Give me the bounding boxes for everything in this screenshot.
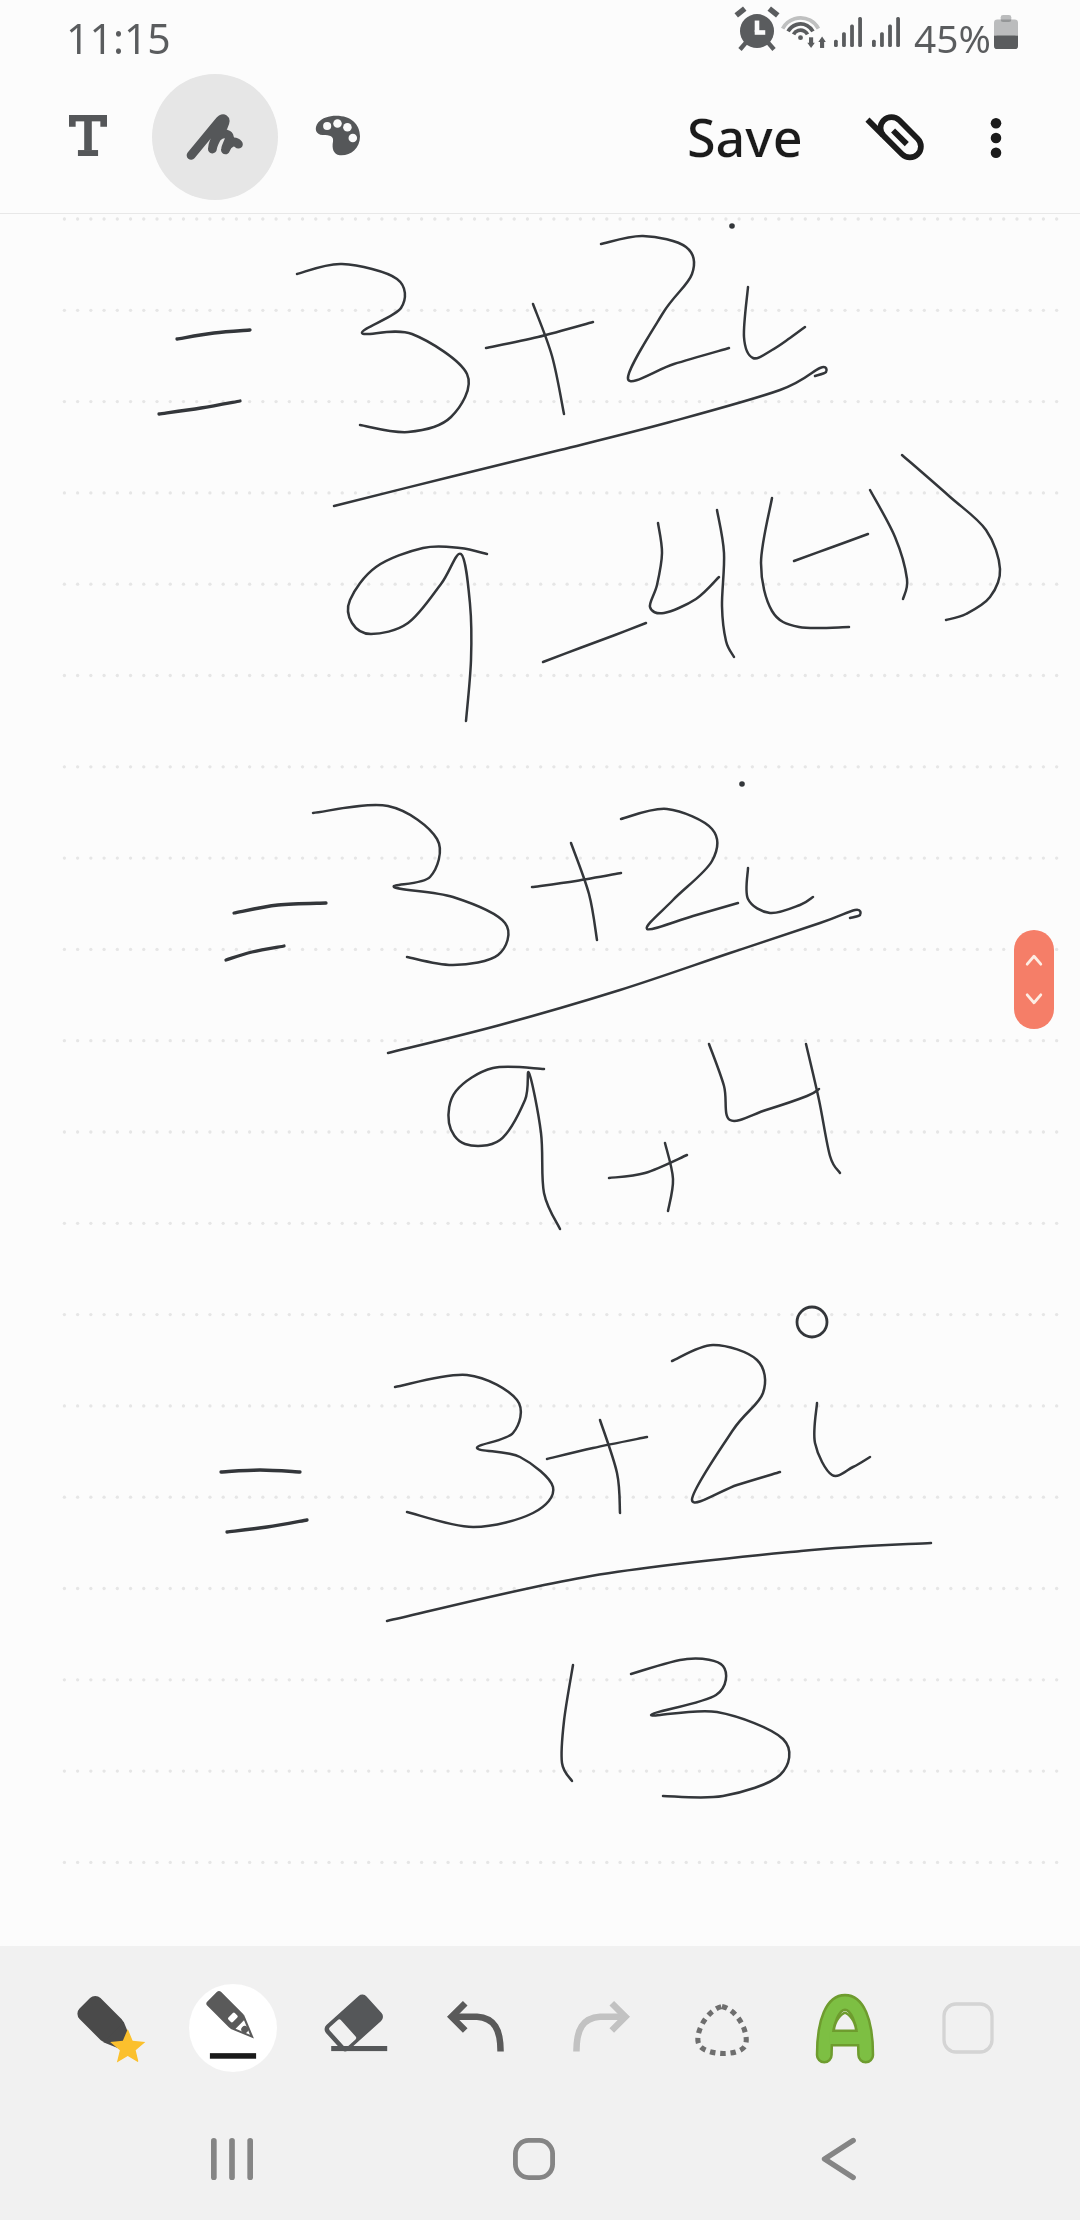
button[interactable]: Text recognition	[801, 1984, 889, 2072]
button[interactable]: Recents	[172, 2094, 292, 2220]
staticText: 45%	[914, 11, 992, 64]
button[interactable]: Text mode	[28, 75, 148, 195]
button[interactable]: Select	[678, 1984, 766, 2072]
button[interactable]: Home	[474, 2094, 594, 2220]
staticText: 11:15	[66, 10, 171, 66]
staticText: Save	[687, 101, 803, 172]
button[interactable]: Back	[778, 2094, 898, 2220]
button[interactable]: Undo	[433, 1984, 521, 2072]
button[interactable]: Scroll	[1014, 930, 1054, 1029]
button[interactable]: More options	[946, 88, 1046, 188]
button[interactable]: Pen	[189, 1984, 277, 2072]
button[interactable]: Attach	[845, 88, 945, 188]
button[interactable]: Eraser	[311, 1984, 399, 2072]
button[interactable]: Save	[665, 86, 825, 186]
button[interactable]: Favourite pen	[66, 1984, 154, 2072]
button[interactable]: Handwriting mode	[152, 74, 278, 200]
button[interactable]: Shape	[924, 1984, 1012, 2072]
button[interactable]: Palette	[277, 75, 397, 195]
button[interactable]: Redo	[556, 1984, 644, 2072]
